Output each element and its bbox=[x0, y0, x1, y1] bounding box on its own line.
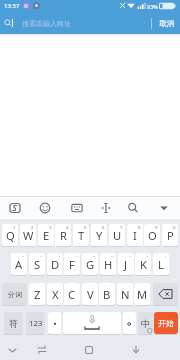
staticText: 搜索或输入网址 bbox=[22, 19, 71, 28]
staticText: ` bbox=[59, 283, 61, 289]
staticText: ` bbox=[76, 283, 78, 289]
staticText: L bbox=[158, 257, 164, 272]
staticText: ` bbox=[111, 283, 113, 289]
staticText: 符 bbox=[9, 318, 18, 329]
staticText: H bbox=[104, 257, 113, 272]
staticText: ` bbox=[94, 283, 96, 289]
staticText: 5 bbox=[84, 224, 87, 230]
button[interactable] bbox=[4, 197, 26, 219]
button[interactable]: T bbox=[73, 224, 89, 246]
button[interactable] bbox=[0, 13, 152, 34]
button[interactable]: 中 bbox=[138, 312, 153, 334]
staticText: K bbox=[140, 257, 147, 272]
staticText: Q bbox=[6, 228, 15, 243]
button[interactable]: V bbox=[82, 283, 98, 305]
button[interactable] bbox=[153, 283, 178, 305]
staticText: ~ bbox=[146, 253, 149, 259]
button[interactable]: L bbox=[153, 253, 169, 275]
staticText: C bbox=[68, 287, 76, 302]
button[interactable]: R bbox=[55, 224, 71, 246]
staticText: B bbox=[103, 287, 111, 302]
staticText: P bbox=[167, 228, 174, 243]
staticText: 中 bbox=[141, 318, 150, 329]
button[interactable]: K bbox=[135, 253, 151, 275]
staticText: N bbox=[121, 287, 130, 302]
button[interactable]: 开始 bbox=[154, 312, 178, 334]
button[interactable]: P bbox=[162, 224, 178, 246]
button[interactable]: 123 bbox=[26, 312, 45, 334]
button[interactable]: O bbox=[144, 224, 160, 246]
staticText: Z bbox=[34, 287, 41, 302]
button[interactable]: M bbox=[134, 283, 150, 305]
button[interactable]: X bbox=[47, 283, 63, 305]
staticText: A bbox=[15, 257, 23, 272]
staticText: ~ bbox=[129, 253, 132, 259]
button[interactable]: D bbox=[47, 253, 63, 275]
button[interactable]: G bbox=[82, 253, 98, 275]
button[interactable]: Z bbox=[29, 283, 45, 305]
staticText: 13:57 bbox=[4, 2, 20, 10]
button[interactable] bbox=[48, 312, 61, 334]
staticText: V bbox=[87, 287, 94, 302]
button[interactable] bbox=[63, 312, 121, 334]
staticText: ~ bbox=[22, 253, 25, 259]
staticText: ` bbox=[146, 283, 148, 289]
staticText: 4 bbox=[66, 224, 69, 230]
button[interactable] bbox=[152, 197, 176, 219]
button[interactable] bbox=[0, 342, 45, 360]
staticText: 123 bbox=[29, 318, 43, 329]
button[interactable]: W bbox=[20, 224, 36, 246]
staticText: R bbox=[60, 228, 67, 243]
button[interactable]: I bbox=[127, 224, 143, 246]
staticText: 开始 bbox=[158, 318, 174, 328]
button[interactable] bbox=[122, 197, 144, 219]
button[interactable]: Y bbox=[91, 224, 107, 246]
staticText: ~ bbox=[164, 253, 167, 259]
staticText: O bbox=[148, 228, 157, 243]
staticText: 6 bbox=[102, 224, 105, 230]
staticText: 0 bbox=[173, 224, 176, 230]
staticText: X bbox=[52, 287, 59, 302]
button[interactable]: A bbox=[11, 253, 27, 275]
button[interactable]: S bbox=[29, 253, 45, 275]
button[interactable]: 分词 bbox=[2, 283, 27, 305]
staticText: ~ bbox=[111, 253, 114, 259]
staticText: ` bbox=[41, 283, 43, 289]
button[interactable]: N bbox=[117, 283, 133, 305]
staticText: 9 bbox=[155, 224, 158, 230]
staticText: 7 bbox=[120, 224, 123, 230]
staticText: T bbox=[78, 228, 85, 243]
staticText: ~ bbox=[40, 253, 43, 259]
staticText: D bbox=[51, 257, 60, 272]
button[interactable] bbox=[123, 312, 136, 334]
staticText: 取消 bbox=[159, 19, 174, 28]
button[interactable] bbox=[66, 197, 88, 219]
staticText: J bbox=[124, 257, 128, 272]
staticText: ~ bbox=[93, 253, 96, 259]
button[interactable]: F bbox=[64, 253, 80, 275]
button[interactable] bbox=[95, 197, 117, 219]
button[interactable]: E bbox=[38, 224, 54, 246]
button[interactable]: J bbox=[118, 253, 134, 275]
staticText: W bbox=[23, 228, 34, 243]
button[interactable]: H bbox=[100, 253, 116, 275]
staticText: 分词 bbox=[8, 290, 22, 299]
staticText: ~ bbox=[58, 253, 61, 259]
button[interactable] bbox=[120, 342, 165, 360]
button[interactable]: 取消 bbox=[152, 13, 180, 34]
button[interactable] bbox=[70, 342, 110, 360]
staticText: 8 bbox=[138, 224, 141, 230]
button[interactable]: B bbox=[99, 283, 115, 305]
staticText: ~ bbox=[75, 253, 78, 259]
button[interactable]: Q bbox=[2, 224, 18, 246]
staticText: E bbox=[43, 228, 50, 243]
button[interactable]: U bbox=[109, 224, 125, 246]
staticText: U bbox=[113, 228, 122, 243]
staticText: 93% bbox=[147, 3, 158, 10]
staticText: I bbox=[133, 228, 137, 243]
button[interactable]: C bbox=[64, 283, 80, 305]
staticText: F bbox=[69, 257, 75, 272]
staticText: 2 bbox=[31, 224, 34, 230]
button[interactable] bbox=[34, 197, 56, 219]
button[interactable]: 符 bbox=[4, 312, 23, 334]
